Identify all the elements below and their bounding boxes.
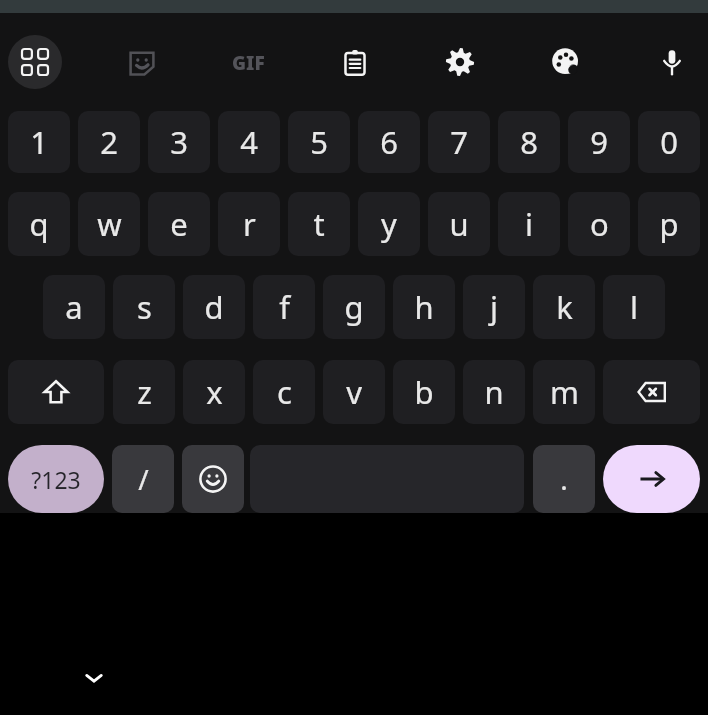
button[interactable]: f bbox=[253, 275, 315, 339]
button[interactable]: t bbox=[288, 192, 350, 256]
button[interactable]: 5 bbox=[288, 111, 350, 173]
staticText: 8 bbox=[520, 121, 538, 163]
button[interactable]: Settings bbox=[434, 36, 486, 88]
button[interactable]: a bbox=[43, 275, 105, 339]
button[interactable]: Emoji bbox=[182, 445, 244, 513]
button[interactable]: m bbox=[533, 360, 595, 424]
staticText: 2 bbox=[100, 121, 118, 163]
button[interactable]: z bbox=[113, 360, 175, 424]
staticText: a bbox=[65, 286, 83, 328]
button[interactable]: y bbox=[358, 192, 420, 256]
staticText: ?123 bbox=[31, 464, 81, 495]
staticText: k bbox=[556, 286, 573, 328]
button[interactable]: g bbox=[323, 275, 385, 339]
staticText: c bbox=[277, 371, 292, 413]
button[interactable]: ?123 bbox=[8, 445, 104, 513]
button[interactable]: 7 bbox=[428, 111, 490, 173]
staticText: GIF bbox=[232, 50, 265, 76]
button[interactable]: Themes bbox=[540, 36, 592, 88]
button[interactable]: 9 bbox=[568, 111, 630, 173]
button[interactable]: b bbox=[393, 360, 455, 424]
button[interactable]: 6 bbox=[358, 111, 420, 173]
button[interactable]: / bbox=[112, 445, 174, 513]
staticText: g bbox=[344, 286, 364, 328]
staticText: . bbox=[560, 460, 568, 498]
staticText: 3 bbox=[170, 121, 188, 163]
button[interactable]: 3 bbox=[148, 111, 210, 173]
staticText: j bbox=[490, 286, 498, 328]
button[interactable]: s bbox=[113, 275, 175, 339]
staticText: v bbox=[346, 371, 362, 413]
staticText: / bbox=[138, 460, 149, 498]
staticText: s bbox=[137, 286, 152, 328]
staticText: 4 bbox=[240, 121, 258, 163]
staticText: y bbox=[381, 203, 397, 245]
button[interactable]: Backspace bbox=[603, 360, 700, 424]
button[interactable]: p bbox=[638, 192, 700, 256]
button[interactable]: q bbox=[8, 192, 70, 256]
button[interactable]: x bbox=[183, 360, 245, 424]
button[interactable]: 2 bbox=[78, 111, 140, 173]
button[interactable]: o bbox=[568, 192, 630, 256]
staticText: z bbox=[137, 371, 152, 413]
button[interactable]: e bbox=[148, 192, 210, 256]
staticText: w bbox=[97, 203, 122, 245]
staticText: p bbox=[659, 203, 679, 245]
staticText: h bbox=[414, 286, 434, 328]
staticText: 0 bbox=[660, 121, 678, 163]
button[interactable]: Voice input bbox=[646, 36, 698, 88]
button[interactable]: k bbox=[533, 275, 595, 339]
staticText: f bbox=[279, 286, 290, 328]
button[interactable]: Stickers bbox=[116, 37, 168, 89]
staticText: 9 bbox=[590, 121, 608, 163]
button[interactable]: Enter bbox=[603, 445, 700, 513]
button[interactable]: Period bbox=[533, 445, 595, 513]
staticText: 1 bbox=[30, 121, 48, 163]
button[interactable]: n bbox=[463, 360, 525, 424]
button[interactable]: Clipboard bbox=[329, 37, 381, 89]
staticText: e bbox=[170, 203, 188, 245]
button[interactable]: r bbox=[218, 192, 280, 256]
button[interactable]: j bbox=[463, 275, 525, 339]
button[interactable]: Hide keyboard bbox=[74, 658, 114, 698]
button[interactable]: d bbox=[183, 275, 245, 339]
staticText: 5 bbox=[310, 121, 328, 163]
staticText: q bbox=[29, 203, 49, 245]
button[interactable]: 1 bbox=[8, 111, 70, 173]
button[interactable]: Shift bbox=[8, 360, 104, 424]
staticText: n bbox=[484, 371, 504, 413]
staticText: b bbox=[414, 371, 434, 413]
staticText: i bbox=[525, 203, 533, 245]
staticText: l bbox=[630, 286, 638, 328]
button[interactable]: i bbox=[498, 192, 560, 256]
button[interactable]: Switch input tools bbox=[8, 35, 62, 89]
button[interactable]: l bbox=[603, 275, 665, 339]
staticText: o bbox=[590, 203, 609, 245]
button[interactable]: u bbox=[428, 192, 490, 256]
staticText: t bbox=[313, 203, 325, 245]
staticText: m bbox=[550, 371, 579, 413]
button[interactable]: w bbox=[78, 192, 140, 256]
button[interactable]: 4 bbox=[218, 111, 280, 173]
button[interactable]: h bbox=[393, 275, 455, 339]
staticText: 6 bbox=[380, 121, 398, 163]
button[interactable]: c bbox=[253, 360, 315, 424]
button[interactable]: 8 bbox=[498, 111, 560, 173]
button[interactable]: v bbox=[323, 360, 385, 424]
staticText: r bbox=[243, 203, 256, 245]
staticText: d bbox=[204, 286, 224, 328]
staticText: u bbox=[449, 203, 469, 245]
button[interactable]: GIF bbox=[222, 37, 274, 89]
staticText: x bbox=[206, 371, 223, 413]
button[interactable]: 0 bbox=[638, 111, 700, 173]
staticText: 7 bbox=[450, 121, 468, 163]
